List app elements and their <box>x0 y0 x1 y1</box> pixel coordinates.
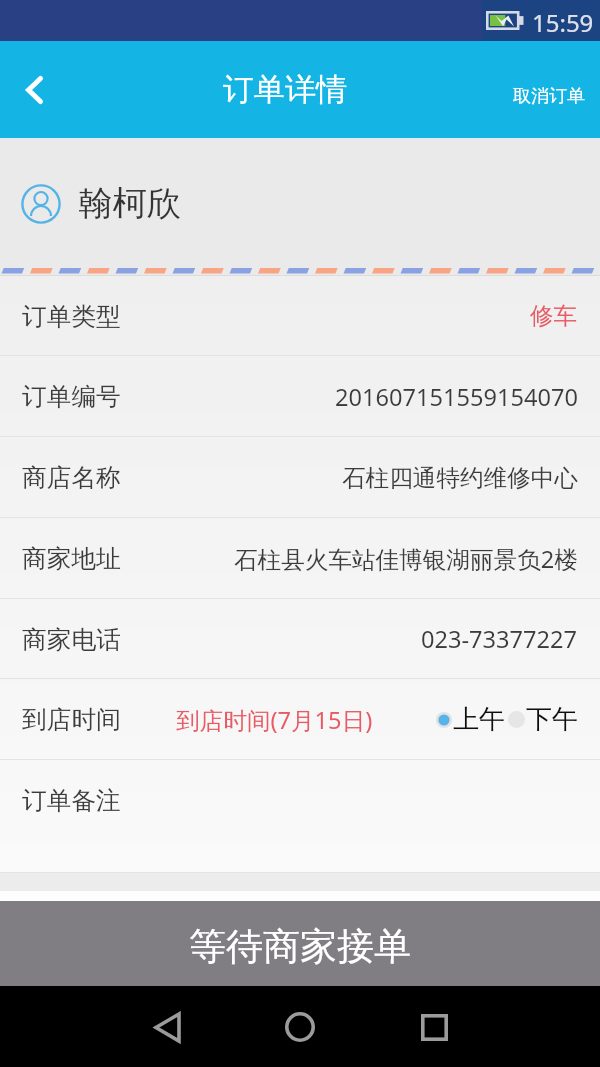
button[interactable]: 到店时间 <box>0 679 600 760</box>
button[interactable]: 商家地址 <box>0 518 600 599</box>
staticText: 023-73377227 <box>421 623 578 655</box>
button[interactable]: 商家电话 <box>0 599 600 679</box>
button[interactable]: 等待商家接单 <box>0 901 600 986</box>
staticText: 到店时间 <box>22 704 121 735</box>
staticText: 商店名称 <box>22 462 121 493</box>
staticText: 翰柯欣 <box>78 182 182 225</box>
staticText: 石柱四通特约维修中心 <box>342 463 578 493</box>
staticText: 订单备注 <box>22 785 121 816</box>
staticText: 取消订单 <box>513 85 585 108</box>
staticText: 上午 <box>453 703 505 736</box>
button[interactable]: Back <box>139 999 195 1055</box>
staticText: 修车 <box>530 301 578 331</box>
button[interactable]: 订单编号 <box>0 356 600 437</box>
staticText: 15:59 <box>532 6 594 39</box>
button[interactable]: 上午 <box>436 703 505 736</box>
button[interactable]: Back <box>0 41 68 138</box>
staticText: 到店时间(7月15日) <box>176 704 373 736</box>
staticText: 石柱县火车站佳博银湖丽景负2楼 <box>234 543 578 575</box>
staticText: 订单类型 <box>22 301 121 332</box>
staticText: 201607151559154070 <box>335 381 578 413</box>
staticText: 商家电话 <box>22 624 121 655</box>
button[interactable]: Home <box>272 999 328 1055</box>
button[interactable]: 下午 <box>508 703 578 736</box>
button[interactable]: 订单备注 <box>0 760 600 873</box>
button[interactable]: 订单类型 <box>0 276 600 356</box>
button[interactable]: 取消订单 <box>497 41 600 138</box>
button[interactable]: Recents <box>406 999 462 1055</box>
staticText: 订单编号 <box>22 381 121 412</box>
staticText: 等待商家接单 <box>189 923 411 970</box>
button[interactable]: 商店名称 <box>0 437 600 518</box>
staticText: 下午 <box>526 703 578 736</box>
staticText: 商家地址 <box>22 543 121 574</box>
staticText: 订单详情 <box>223 70 347 109</box>
